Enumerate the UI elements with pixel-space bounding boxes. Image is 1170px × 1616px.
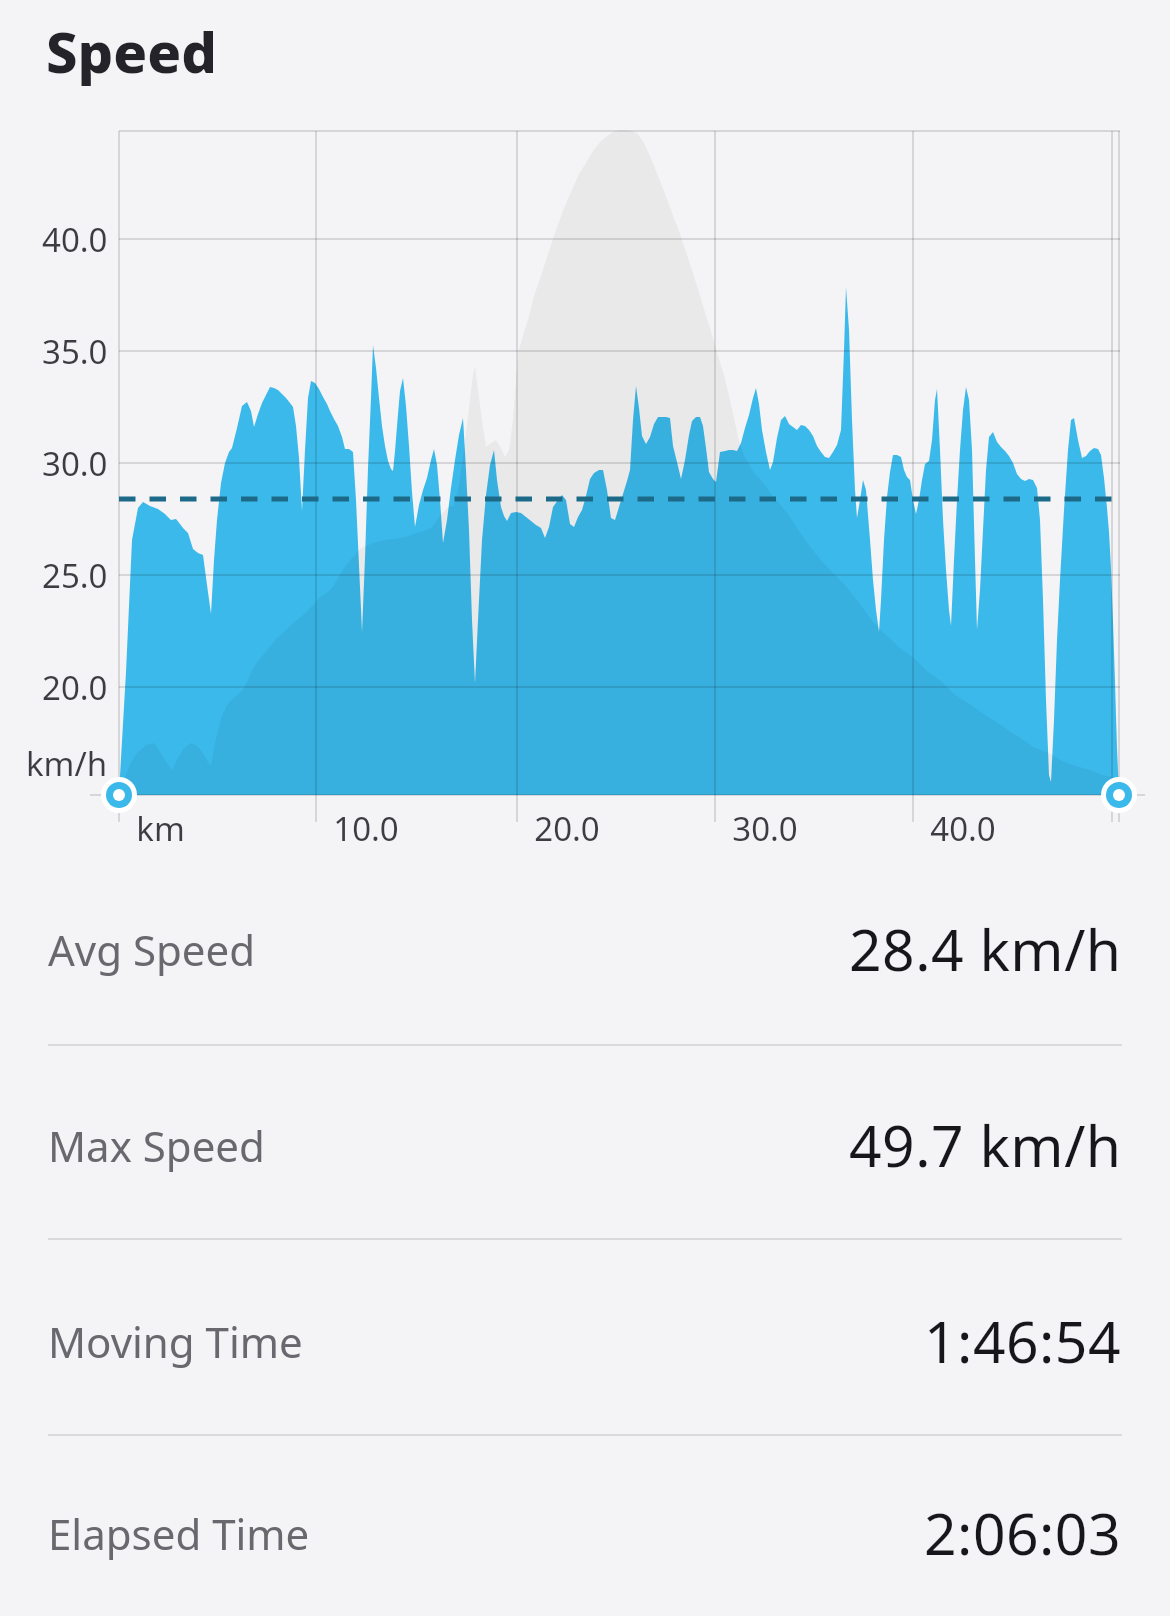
staticText: 40.0 [42,217,108,261]
staticText: 1:46:54 [924,1302,1122,1380]
staticText: 10.0 [333,806,399,850]
staticText: Max Speed [48,1117,265,1174]
staticText: 30.0 [732,806,798,850]
staticText: 25.0 [42,553,108,597]
staticText: Moving Time [48,1313,303,1370]
staticText: 20.0 [534,806,600,850]
button[interactable]: Elapsed Time [0,1436,1170,1616]
button[interactable]: Moving Time [0,1244,1170,1438]
staticText: Elapsed Time [48,1505,310,1562]
staticText: 20.0 [42,665,108,709]
staticText: 30.0 [42,441,108,485]
button[interactable]: Avg Speed [0,852,1170,1046]
button[interactable] [0,0,1170,860]
staticText: Speed [46,13,217,89]
staticText: 49.7 km/h [849,1106,1122,1184]
button[interactable]: Max Speed [0,1048,1170,1242]
staticText: 28.4 km/h [849,910,1122,988]
staticText: km/h [26,741,108,785]
staticText: Avg Speed [48,921,256,978]
staticText: 2:06:03 [924,1494,1122,1572]
staticText: 35.0 [42,329,108,373]
staticText: km [136,806,185,850]
staticText: 40.0 [930,806,996,850]
